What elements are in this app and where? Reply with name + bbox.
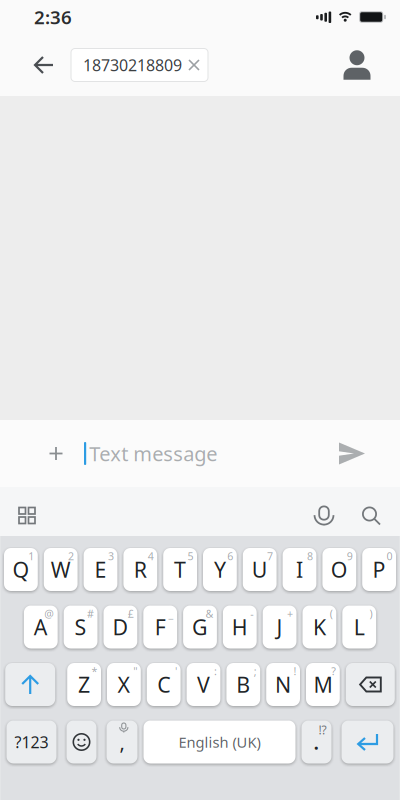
button[interactable]: Apps bbox=[0, 493, 54, 537]
button[interactable]: Shift bbox=[5, 663, 55, 706]
button[interactable]: Clear bbox=[185, 48, 208, 81]
button[interactable]: O bbox=[322, 548, 356, 591]
button[interactable]: Space bbox=[143, 720, 295, 763]
button[interactable]: Y bbox=[203, 548, 237, 591]
button[interactable]: Back bbox=[18, 34, 62, 96]
staticText: F bbox=[155, 613, 166, 641]
button[interactable]: T bbox=[163, 548, 197, 591]
button[interactable]: U bbox=[243, 548, 277, 591]
staticText: V bbox=[197, 670, 210, 699]
staticText: : bbox=[214, 664, 217, 678]
staticText: N bbox=[275, 670, 291, 699]
button[interactable]: Emoji bbox=[66, 720, 96, 763]
staticText: !? bbox=[318, 722, 326, 738]
staticText: £ bbox=[128, 606, 134, 621]
staticText: P bbox=[373, 555, 386, 584]
staticText: ) bbox=[370, 606, 373, 621]
staticText: U bbox=[252, 555, 268, 584]
staticText: Y bbox=[214, 555, 226, 584]
staticText: 9 bbox=[347, 549, 353, 563]
staticText: O bbox=[331, 555, 348, 584]
button[interactable]: Q bbox=[4, 548, 38, 591]
button[interactable]: 18730218809 bbox=[71, 48, 208, 81]
button[interactable]: Attach bbox=[38, 420, 74, 487]
staticText: . bbox=[313, 729, 319, 755]
staticText: J bbox=[277, 613, 283, 641]
staticText: ; bbox=[254, 664, 257, 678]
staticText: T bbox=[174, 555, 186, 584]
staticText: M bbox=[313, 670, 332, 699]
button[interactable]: S bbox=[64, 605, 97, 648]
button[interactable]: Search bbox=[349, 493, 393, 537]
staticText: ? bbox=[331, 664, 336, 678]
button[interactable]: F bbox=[143, 605, 177, 648]
staticText: 2 bbox=[68, 549, 74, 563]
button[interactable]: H bbox=[223, 605, 257, 648]
staticText: # bbox=[87, 606, 94, 621]
button[interactable]: ?123 bbox=[6, 720, 56, 763]
button[interactable]: Voice input bbox=[302, 493, 346, 537]
staticText: ! bbox=[293, 664, 296, 678]
staticText: L bbox=[354, 613, 365, 641]
staticText: + bbox=[287, 606, 293, 621]
button[interactable]: Text message bbox=[84, 420, 328, 487]
staticText: @ bbox=[44, 606, 54, 621]
button[interactable]: Z bbox=[67, 663, 101, 706]
button[interactable]: V bbox=[187, 663, 220, 706]
button[interactable]: M bbox=[306, 663, 340, 706]
button[interactable]: E bbox=[84, 548, 117, 591]
staticText: Text message bbox=[89, 440, 217, 467]
button[interactable]: J bbox=[263, 605, 296, 648]
button[interactable]: Send bbox=[328, 420, 376, 487]
button[interactable]: I bbox=[283, 548, 316, 591]
staticText: * bbox=[91, 664, 97, 678]
staticText: E bbox=[94, 555, 106, 584]
staticText: ' bbox=[175, 664, 177, 678]
staticText: B bbox=[236, 670, 250, 699]
staticText: & bbox=[205, 606, 213, 621]
staticText: I bbox=[296, 555, 303, 584]
button[interactable]: Backspace bbox=[346, 663, 395, 706]
button[interactable]: Period bbox=[301, 720, 331, 763]
button[interactable]: B bbox=[226, 663, 260, 706]
staticText: S bbox=[75, 613, 87, 641]
staticText: 2:36 bbox=[34, 5, 72, 29]
staticText: G bbox=[192, 613, 208, 641]
staticText: D bbox=[112, 613, 128, 641]
staticText: 8 bbox=[307, 549, 313, 563]
staticText: Q bbox=[12, 555, 29, 584]
staticText: ( bbox=[330, 606, 333, 621]
staticText: 3 bbox=[108, 549, 114, 563]
staticText: 0 bbox=[386, 549, 392, 563]
staticText: 1 bbox=[28, 549, 34, 563]
button[interactable]: P bbox=[362, 548, 396, 591]
staticText: , bbox=[119, 729, 124, 755]
button[interactable]: C bbox=[147, 663, 181, 706]
button[interactable]: R bbox=[123, 548, 157, 591]
staticText: X bbox=[117, 670, 130, 699]
staticText: H bbox=[232, 613, 248, 641]
staticText: 5 bbox=[187, 549, 193, 563]
staticText: R bbox=[134, 555, 147, 584]
staticText: ?123 bbox=[14, 731, 48, 753]
button[interactable]: L bbox=[342, 605, 376, 648]
staticText: 4 bbox=[148, 549, 154, 563]
button[interactable]: Comma bbox=[106, 720, 137, 763]
button[interactable]: D bbox=[103, 605, 137, 648]
staticText: - bbox=[250, 606, 253, 621]
button[interactable]: A bbox=[24, 605, 58, 648]
button[interactable]: N bbox=[266, 663, 300, 706]
staticText: 7 bbox=[267, 549, 273, 563]
staticText: _ bbox=[169, 606, 174, 621]
staticText: 18730218809 bbox=[83, 54, 182, 76]
button[interactable]: Enter bbox=[341, 720, 393, 763]
button[interactable]: Contact bbox=[327, 34, 387, 96]
button[interactable]: G bbox=[183, 605, 217, 648]
button[interactable]: K bbox=[302, 605, 336, 648]
staticText: Z bbox=[78, 670, 90, 699]
staticText: English (UK) bbox=[178, 732, 260, 752]
button[interactable]: W bbox=[44, 548, 78, 591]
button[interactable]: X bbox=[107, 663, 141, 706]
staticText: C bbox=[157, 670, 170, 699]
staticText: K bbox=[313, 613, 326, 641]
